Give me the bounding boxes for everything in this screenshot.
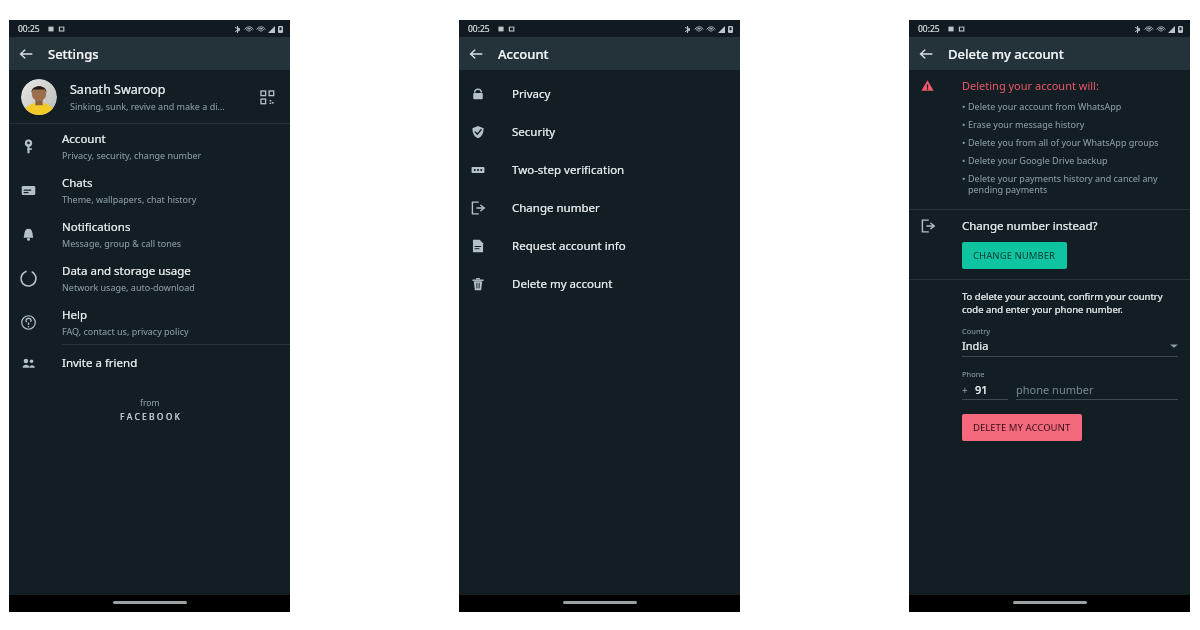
staticText: 00:25 xyxy=(918,23,940,35)
staticText: from xyxy=(140,397,160,409)
button[interactable]: Security xyxy=(459,113,740,151)
staticText: • xyxy=(962,118,968,130)
staticText: Two-step verification xyxy=(512,162,625,178)
staticText: Deleting your account will: xyxy=(962,78,1099,93)
staticText: • xyxy=(962,154,968,166)
staticText: Message, group & call tones xyxy=(62,237,182,249)
button[interactable]: Request account info xyxy=(459,227,740,265)
button[interactable]: Notifications xyxy=(9,212,290,256)
button[interactable]: Chats xyxy=(9,168,290,212)
button[interactable]: Sanath Swaroop xyxy=(9,70,290,123)
staticText: Account xyxy=(62,131,106,147)
button[interactable]: Delete my account xyxy=(459,265,740,303)
staticText: 00:25 xyxy=(468,23,490,35)
button[interactable]: India xyxy=(962,338,1178,353)
staticText: • xyxy=(962,100,968,112)
staticText: Change number instead? xyxy=(962,218,1098,234)
staticText: Theme, wallpapers, chat history xyxy=(62,193,197,205)
button[interactable]: Account xyxy=(9,124,290,168)
staticText: India xyxy=(962,338,1170,353)
staticText: Privacy xyxy=(512,86,551,102)
staticText: 91 xyxy=(975,382,988,397)
staticText: F A C E B O O K xyxy=(120,411,180,423)
staticText: CHANGE NUMBER xyxy=(973,249,1056,262)
staticText: • xyxy=(962,136,968,148)
staticText: Sanath Swaroop xyxy=(70,81,166,98)
staticText: Sinking, sunk, revive and make a di… xyxy=(70,100,225,112)
button[interactable]: Two-step verification xyxy=(459,151,740,189)
button[interactable]: CHANGE NUMBER xyxy=(962,242,1067,269)
staticText: Change number xyxy=(512,200,600,216)
staticText: Account xyxy=(498,45,549,63)
button[interactable]: Privacy xyxy=(459,75,740,113)
staticText: phone number xyxy=(1016,382,1094,397)
button[interactable]: Back xyxy=(459,37,492,70)
staticText: FAQ, contact us, privacy policy xyxy=(62,325,189,337)
button[interactable]: Invite a friend xyxy=(9,345,290,381)
staticText: 00:25 xyxy=(18,23,40,35)
staticText: Delete my account xyxy=(948,45,1064,63)
staticText: Data and storage usage xyxy=(62,263,191,279)
staticText: Chats xyxy=(62,175,93,191)
staticText: Erase your message history xyxy=(968,118,1085,130)
staticText: Delete your account from WhatsApp xyxy=(968,100,1122,112)
staticText: Phone xyxy=(962,369,985,379)
button[interactable]: Back xyxy=(909,37,942,70)
staticText: + xyxy=(962,383,968,397)
button[interactable]: Data and storage usage xyxy=(9,256,290,300)
staticText: Network usage, auto-download xyxy=(62,281,195,293)
staticText: Privacy, security, change number xyxy=(62,149,202,161)
button[interactable]: Change number xyxy=(459,189,740,227)
staticText: Request account info xyxy=(512,238,626,254)
staticText: Delete my account xyxy=(512,276,613,292)
staticText: Delete your payments history and cancel … xyxy=(968,172,1180,196)
button[interactable]: QR code xyxy=(256,86,278,108)
staticText: To delete your account, confirm your cou… xyxy=(962,290,1178,316)
staticText: Notifications xyxy=(62,219,131,235)
staticText: Security xyxy=(512,124,556,140)
staticText: Delete your Google Drive backup xyxy=(968,154,1108,166)
staticText: Help xyxy=(62,307,88,323)
button[interactable]: Back xyxy=(9,37,42,70)
staticText: Settings xyxy=(48,45,99,63)
staticText: Invite a friend xyxy=(62,355,138,371)
staticText: DELETE MY ACCOUNT xyxy=(973,421,1071,434)
button[interactable]: Help xyxy=(9,300,290,344)
staticText: Country xyxy=(962,326,991,336)
button[interactable]: DELETE MY ACCOUNT xyxy=(962,414,1082,441)
staticText: Delete you from all of your WhatsApp gro… xyxy=(968,136,1159,148)
staticText: • xyxy=(962,172,968,184)
